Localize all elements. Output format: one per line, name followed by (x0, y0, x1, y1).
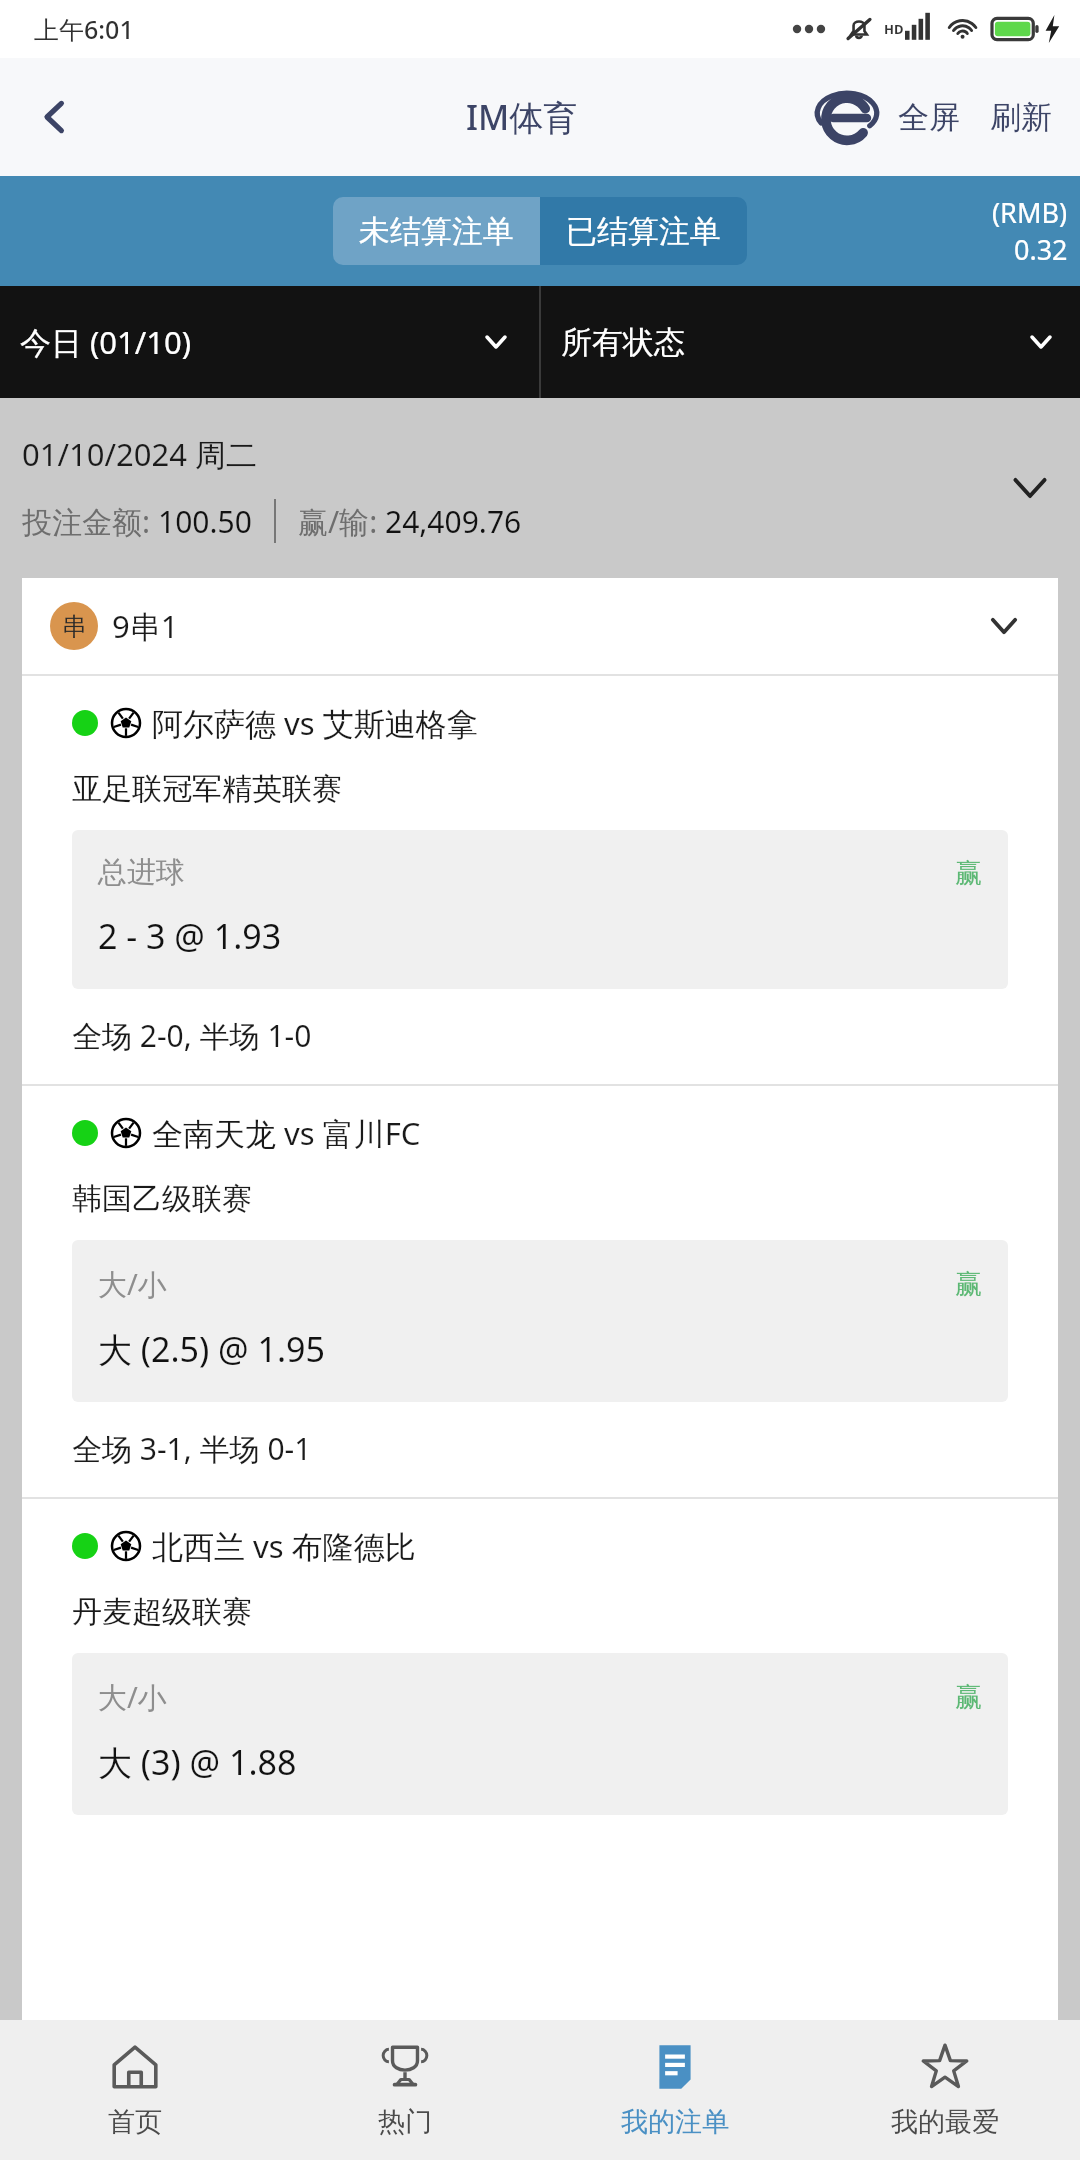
button[interactable]: 已结算注单 (540, 197, 747, 265)
staticText: 首页 (108, 2105, 162, 2139)
staticText: (RMB) (992, 194, 1068, 231)
staticText: 赢/输: (298, 501, 385, 542)
staticText: 我的注单 (621, 2105, 729, 2139)
staticText: 热门 (378, 2105, 432, 2139)
button[interactable]: 未结算注单 (333, 197, 540, 265)
staticText: 已结算注单 (566, 212, 721, 251)
staticText: 丹麦超级联赛 (72, 1593, 252, 1631)
button[interactable]: 我的注单 (540, 2020, 810, 2160)
staticText: 大 (3) @ 1.88 (98, 1739, 297, 1785)
button[interactable]: 今日 (01/10) (0, 286, 539, 398)
button[interactable]: 大/小 (72, 1240, 1008, 1402)
staticText: 0.32 (1014, 231, 1068, 268)
staticText: 阿尔萨德 vs 艾斯迪格拿 (152, 702, 478, 744)
staticText: 我的最爱 (891, 2105, 999, 2139)
staticText: 总进球 (98, 854, 955, 891)
button[interactable]: Browser (812, 83, 882, 153)
button[interactable]: 总进球 (72, 830, 1008, 989)
staticText: 串 (62, 611, 87, 642)
staticText: 全屏 (898, 98, 960, 137)
staticText: 上午6:01 (34, 12, 134, 46)
button[interactable]: Collapse (1002, 460, 1058, 516)
button[interactable]: 所有状态 (541, 286, 1080, 398)
staticText: 北西兰 vs 布隆德比 (152, 1525, 416, 1567)
staticText: 2 - 3 @ 1.93 (98, 913, 282, 959)
staticText: HD (884, 20, 904, 38)
staticText: IM体育 (466, 94, 578, 140)
staticText: 9串1 (112, 605, 984, 647)
staticText: 100.50 (158, 501, 252, 542)
staticText: 全南天龙 vs 富川FC (152, 1112, 421, 1154)
staticText: 01/10/2024 周二 (22, 433, 257, 475)
button[interactable]: 大/小 (72, 1653, 1008, 1815)
button[interactable]: 首页 (0, 2020, 270, 2160)
button[interactable]: 串 (22, 578, 1058, 674)
button[interactable]: 我的最爱 (810, 2020, 1080, 2160)
staticText: 投注金额: (22, 501, 158, 542)
staticText: 亚足联冠军精英联赛 (72, 770, 342, 808)
staticText: 未结算注单 (359, 212, 514, 251)
staticText: 全场 3-1, 半场 0-1 (72, 1428, 312, 1469)
button[interactable]: 全屏 (888, 82, 970, 153)
staticText: 今日 (01/10) (20, 321, 192, 363)
staticText: 韩国乙级联赛 (72, 1180, 252, 1218)
staticText: 全场 2-0, 半场 1-0 (72, 1015, 312, 1056)
staticText: 赢 (955, 1680, 982, 1714)
staticText: 大/小 (98, 1677, 955, 1717)
staticText: 24,409.76 (385, 501, 522, 542)
staticText: 所有状态 (561, 323, 685, 362)
button[interactable]: Back (0, 62, 110, 172)
staticText: 大/小 (98, 1264, 955, 1304)
staticText: 赢 (955, 1267, 982, 1301)
button[interactable]: 刷新 (984, 82, 1058, 153)
staticText: 赢 (955, 856, 982, 890)
staticText: 大 (2.5) @ 1.95 (98, 1326, 325, 1372)
button[interactable]: 热门 (270, 2020, 540, 2160)
staticText: 刷新 (990, 98, 1052, 137)
